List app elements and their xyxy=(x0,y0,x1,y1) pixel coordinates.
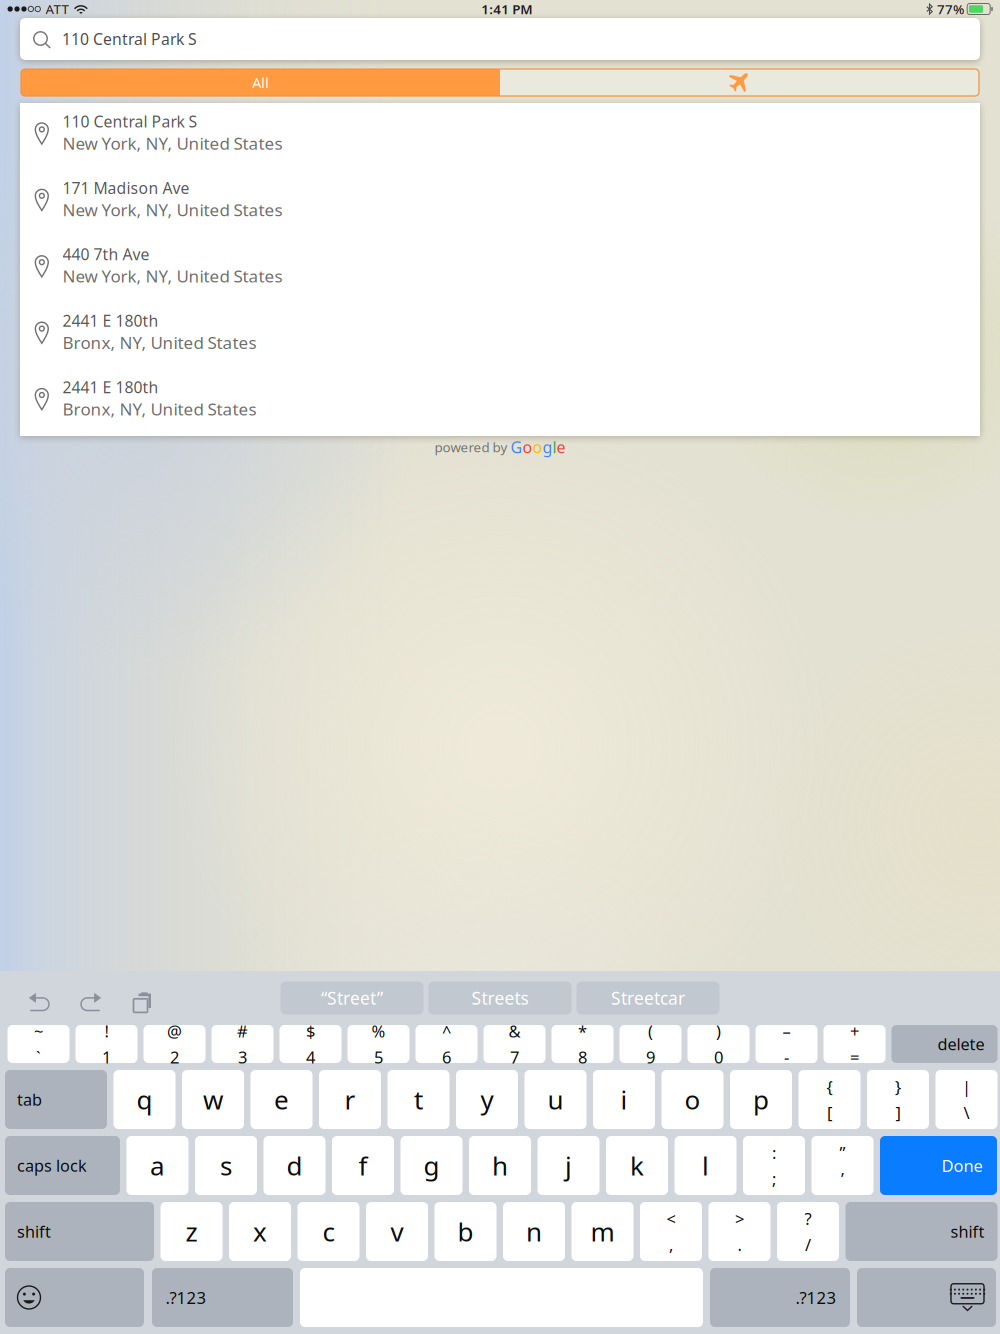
button[interactable]: – xyxy=(755,1025,817,1063)
button[interactable]: .?123 xyxy=(710,1268,850,1327)
button[interactable]: “Street” xyxy=(280,981,423,1014)
staticText: 110 Central Park S xyxy=(63,111,198,132)
staticText: i xyxy=(620,1082,627,1117)
button[interactable]: ) xyxy=(687,1025,749,1063)
staticText: ATT xyxy=(45,0,68,18)
button[interactable]: Done xyxy=(880,1136,997,1195)
button[interactable]: Emoji xyxy=(5,1268,144,1327)
staticText: y xyxy=(480,1082,493,1117)
button[interactable]: & xyxy=(483,1025,545,1063)
button[interactable]: y xyxy=(456,1070,518,1129)
button[interactable]: > xyxy=(708,1202,770,1261)
button[interactable]: tab xyxy=(5,1070,107,1129)
staticText: New York, NY, United States xyxy=(63,132,283,154)
staticText: ” xyxy=(839,1141,845,1163)
button[interactable]: ” xyxy=(811,1136,873,1195)
button[interactable]: q xyxy=(113,1070,175,1129)
button[interactable]: % xyxy=(347,1025,409,1063)
staticText: . xyxy=(737,1233,741,1255)
staticText: g xyxy=(423,1148,439,1183)
staticText: v xyxy=(390,1214,403,1249)
staticText: 8 xyxy=(578,1046,587,1068)
button[interactable]: k xyxy=(606,1136,668,1195)
button[interactable]: l xyxy=(674,1136,736,1195)
staticText: l xyxy=(702,1148,709,1183)
staticText: Done xyxy=(941,1154,982,1176)
button[interactable]: f xyxy=(332,1136,394,1195)
button[interactable]: Streets xyxy=(428,981,571,1014)
button[interactable]: r xyxy=(319,1070,381,1129)
staticText: 0 xyxy=(714,1046,723,1068)
button[interactable]: | xyxy=(935,1070,997,1129)
button[interactable]: Dismiss keyboard xyxy=(857,1268,996,1327)
button[interactable]: Undo xyxy=(13,979,65,1025)
button[interactable]: delete xyxy=(891,1025,997,1063)
staticText: u xyxy=(547,1082,563,1117)
button[interactable]: 171 Madison Ave xyxy=(20,169,980,236)
button[interactable]: v xyxy=(366,1202,428,1261)
button[interactable]: ? xyxy=(777,1202,839,1261)
button[interactable]: ^ xyxy=(415,1025,477,1063)
button[interactable]: 110 Central Park S xyxy=(20,103,980,169)
staticText: r xyxy=(344,1082,355,1117)
button[interactable]: t xyxy=(387,1070,449,1129)
button[interactable]: : xyxy=(743,1136,805,1195)
staticText: New York, NY, United States xyxy=(63,265,283,287)
button[interactable]: z xyxy=(160,1202,222,1261)
button[interactable]: Redo xyxy=(65,979,117,1025)
button[interactable]: h xyxy=(469,1136,531,1195)
button[interactable]: u xyxy=(524,1070,586,1129)
button[interactable]: m xyxy=(571,1202,633,1261)
staticText: ; xyxy=(772,1167,776,1189)
staticText: / xyxy=(805,1233,811,1255)
button[interactable]: { xyxy=(798,1070,860,1129)
button[interactable]: ~ xyxy=(7,1025,69,1063)
button[interactable]: p xyxy=(730,1070,792,1129)
button[interactable]: Paste xyxy=(117,979,169,1025)
button[interactable]: All xyxy=(21,69,500,96)
button[interactable]: Flights xyxy=(500,69,979,96)
staticText: s xyxy=(220,1148,232,1183)
button[interactable]: .?123 xyxy=(152,1268,293,1327)
button[interactable]: i xyxy=(593,1070,655,1129)
staticText: o xyxy=(532,436,542,458)
button[interactable]: shift xyxy=(845,1202,997,1261)
staticText: New York, NY, United States xyxy=(63,198,283,221)
button[interactable]: d xyxy=(263,1136,325,1195)
button[interactable]: 440 7th Ave xyxy=(20,236,980,302)
button[interactable]: o xyxy=(661,1070,723,1129)
button[interactable]: * xyxy=(551,1025,613,1063)
button[interactable]: ( xyxy=(619,1025,681,1063)
button[interactable]: @ xyxy=(143,1025,205,1063)
button[interactable]: j xyxy=(537,1136,599,1195)
button[interactable]: w xyxy=(182,1070,244,1129)
button[interactable]: s xyxy=(195,1136,257,1195)
button[interactable]: e xyxy=(250,1070,312,1129)
button[interactable]: $ xyxy=(279,1025,341,1063)
button[interactable]: x xyxy=(229,1202,291,1261)
button[interactable]: < xyxy=(640,1202,702,1261)
button[interactable]: 110 Central Park S xyxy=(20,18,980,60)
button[interactable]: + xyxy=(823,1025,885,1063)
button[interactable]: } xyxy=(867,1070,929,1129)
button[interactable]: 2441 E 180th xyxy=(20,369,980,435)
button[interactable]: g xyxy=(400,1136,462,1195)
staticText: p xyxy=(753,1082,769,1117)
staticText: l xyxy=(552,436,556,458)
button[interactable]: Streetcar xyxy=(576,981,719,1014)
button[interactable]: a xyxy=(126,1136,188,1195)
button[interactable]: caps lock xyxy=(5,1136,120,1195)
button[interactable]: n xyxy=(503,1202,565,1261)
button[interactable]: b xyxy=(434,1202,496,1261)
button[interactable]: # xyxy=(211,1025,273,1063)
button[interactable]: shift xyxy=(5,1202,154,1261)
staticText: delete xyxy=(937,1033,984,1055)
staticText: ) xyxy=(716,1020,721,1042)
staticText: Streets xyxy=(471,986,528,1009)
button[interactable]: c xyxy=(297,1202,359,1261)
staticText: t xyxy=(414,1082,423,1117)
staticText: k xyxy=(630,1148,644,1183)
button[interactable]: 2441 E 180th xyxy=(20,302,980,369)
button[interactable]: ! xyxy=(75,1025,137,1063)
